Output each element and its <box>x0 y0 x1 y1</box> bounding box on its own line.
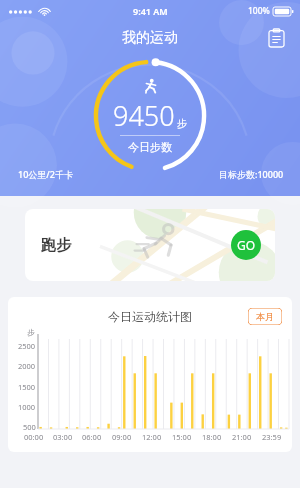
staticText: 今日步数 <box>128 140 172 154</box>
staticText: 00:00 <box>24 432 44 442</box>
staticText: 500 <box>23 422 36 432</box>
staticText: 步 <box>177 117 187 130</box>
staticText: 1000 <box>18 402 36 412</box>
staticText: GO <box>237 237 256 253</box>
button[interactable]: 本月 <box>248 308 282 325</box>
staticText: 10公里/2千卡 <box>18 168 73 180</box>
button[interactable]: 运动记录 <box>261 23 291 53</box>
staticText: 100% <box>248 5 270 17</box>
staticText: 跑步 <box>41 236 71 255</box>
staticText: 18:00 <box>202 432 222 442</box>
staticText: 今日运动统计图 <box>108 309 192 324</box>
button[interactable]: 跑步 <box>25 209 275 281</box>
staticText: 06:00 <box>82 432 102 442</box>
staticText: 9450 <box>113 97 175 134</box>
staticText: 15:00 <box>172 432 192 442</box>
staticText: 9:41 AM <box>133 5 168 17</box>
staticText: 我的运动 <box>122 29 178 47</box>
staticText: 12:00 <box>142 432 162 442</box>
staticText: 目标步数:10000 <box>219 168 284 180</box>
button[interactable]: GO <box>231 230 261 260</box>
staticText: 2000 <box>18 361 36 371</box>
staticText: 09:00 <box>112 432 132 442</box>
staticText: 23:59 <box>262 432 282 442</box>
staticText: 2500 <box>18 341 36 351</box>
staticText: 21:00 <box>232 432 252 442</box>
staticText: 步 <box>27 328 35 337</box>
staticText: 1500 <box>18 382 36 392</box>
staticText: 03:00 <box>53 432 73 442</box>
staticText: 本月 <box>256 311 274 322</box>
